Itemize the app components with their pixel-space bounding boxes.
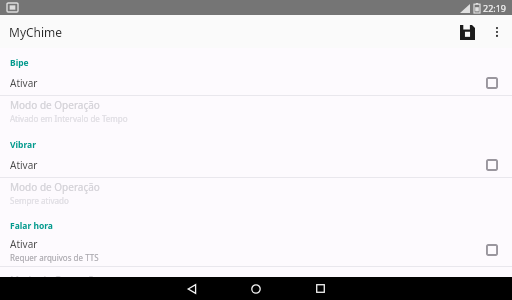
button[interactable]: Modo de Operação [0, 178, 512, 208]
staticText: Vibrar [10, 139, 36, 151]
button[interactable]: Back [170, 277, 214, 300]
staticText: Ativar [10, 158, 38, 172]
staticText: 22:19 [483, 2, 507, 14]
staticText: Sempre ativado [10, 195, 69, 206]
staticText: MyChime [9, 24, 63, 40]
staticText: Modo de Operação [10, 180, 100, 194]
button[interactable]: Ativar [0, 153, 512, 177]
staticText: Ativar [10, 237, 38, 251]
button[interactable]: Recent apps [298, 277, 342, 300]
staticText: Requer arquivos de TTS [10, 252, 99, 263]
staticText: Ativado em Intervalo de Tempo [10, 113, 128, 124]
button[interactable]: Modo de Operação [0, 96, 512, 126]
staticText: Modo de Operação [10, 98, 100, 112]
button[interactable]: Save [452, 17, 482, 47]
button[interactable]: Modo de Operação [0, 267, 512, 292]
button[interactable]: Home [234, 277, 278, 300]
button[interactable]: More options [482, 17, 512, 47]
staticText: Falar hora [10, 220, 53, 232]
staticText: Bipe [10, 57, 29, 69]
staticText: Ativar [10, 76, 38, 90]
button[interactable]: Ativar [0, 234, 512, 266]
button[interactable]: Ativar [0, 71, 512, 95]
staticText: Modo de Operação [10, 273, 100, 287]
